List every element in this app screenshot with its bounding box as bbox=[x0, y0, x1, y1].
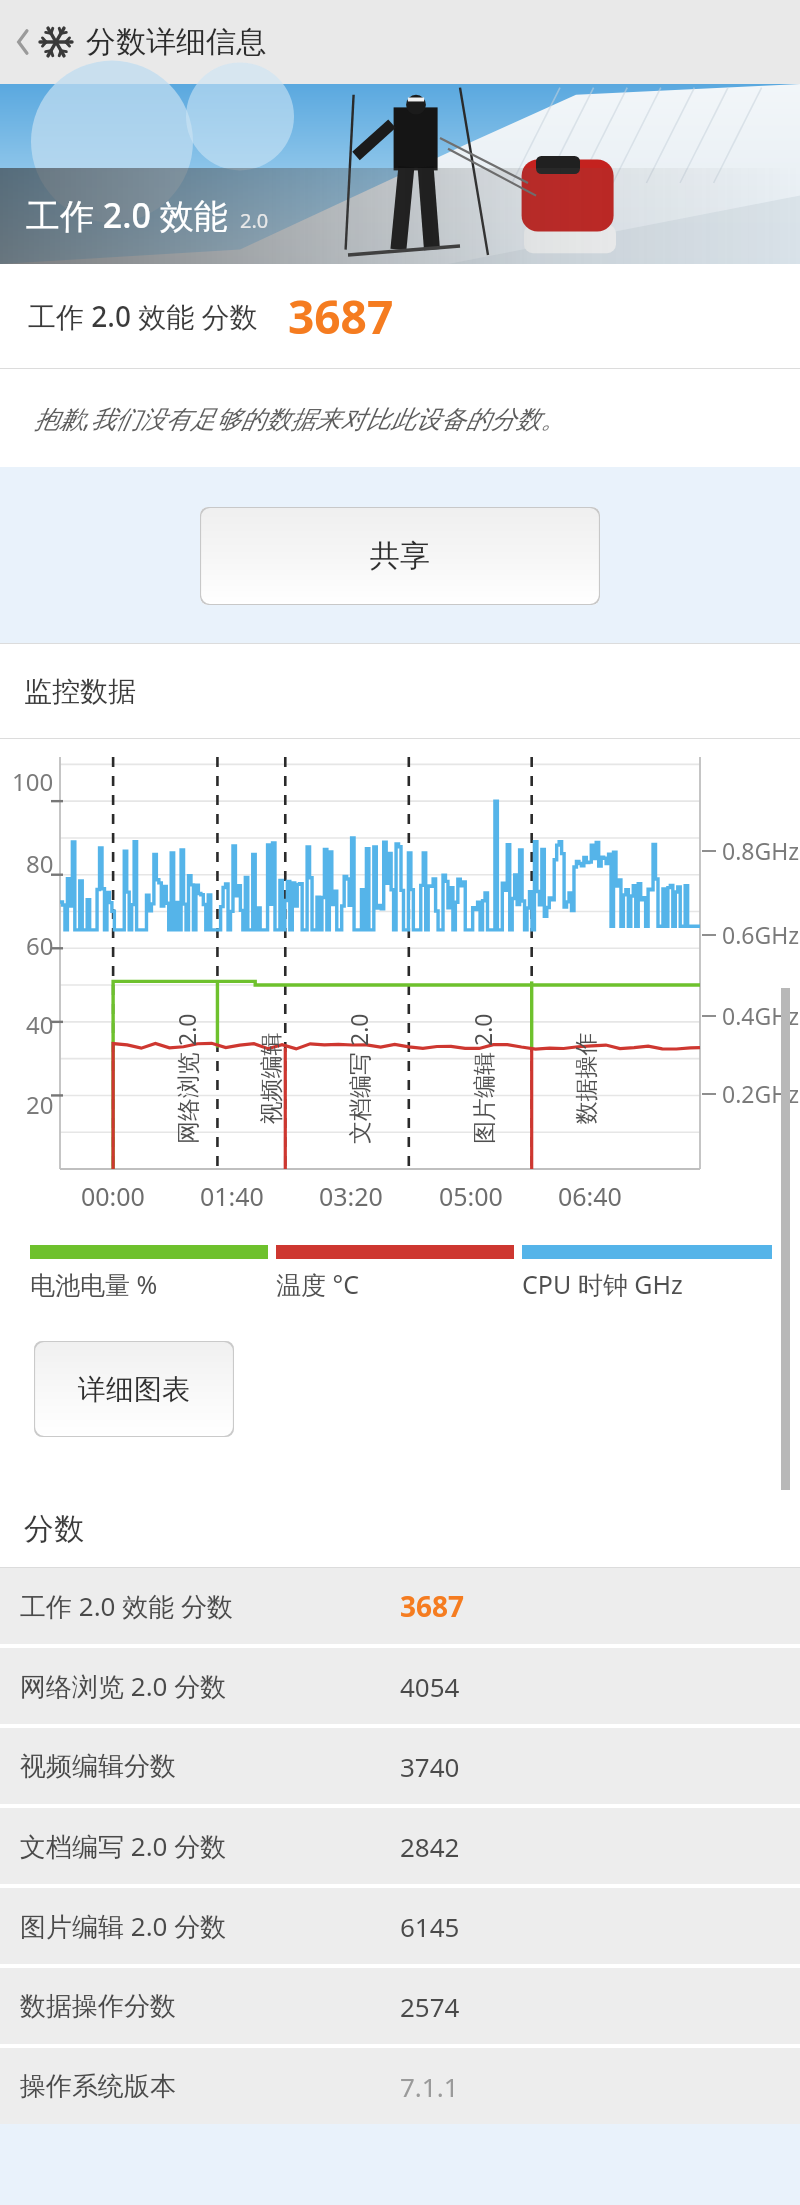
staticText: 2842 bbox=[400, 1829, 460, 1864]
staticText: 文档编写 2.0 bbox=[343, 1013, 374, 1144]
staticText: 工作 2.0 效能 分数 bbox=[20, 1588, 233, 1624]
staticText: 视频编辑 bbox=[256, 1032, 285, 1124]
staticText: 分数详细信息 bbox=[86, 23, 266, 61]
staticText: 工作 2.0 效能 分数 bbox=[28, 297, 258, 335]
staticText: 文档编写 2.0 分数 bbox=[20, 1828, 227, 1864]
staticText: 00:00 bbox=[81, 1179, 145, 1213]
button[interactable]: 共享 bbox=[200, 507, 600, 605]
staticText: 0.4GHz bbox=[722, 1000, 800, 1031]
staticText: 详细图表 bbox=[78, 1372, 190, 1407]
button[interactable]: 工作 2.0 效能 分数 bbox=[0, 1568, 800, 1644]
staticText: 100 bbox=[12, 765, 54, 798]
staticText: 0.2GHz bbox=[722, 1078, 800, 1109]
staticText: 图片编辑 2.0 bbox=[467, 1013, 498, 1144]
staticText: 2574 bbox=[400, 1989, 460, 2024]
button[interactable]: 详细图表 bbox=[34, 1341, 234, 1437]
staticText: 7.1.1 bbox=[400, 2069, 459, 2104]
staticText: 6145 bbox=[400, 1909, 460, 1944]
staticText: 监控数据 bbox=[24, 674, 136, 709]
staticText: 60 bbox=[26, 929, 54, 962]
staticText: 分数 bbox=[24, 1510, 84, 1548]
staticText: 2.0 bbox=[240, 207, 269, 234]
button[interactable]: 数据操作分数 bbox=[0, 1968, 800, 2044]
staticText: CPU 时钟 GHz bbox=[522, 1267, 683, 1301]
button[interactable]: 视频编辑分数 bbox=[0, 1728, 800, 1804]
staticText: 电池电量 % bbox=[30, 1267, 158, 1301]
staticText: 图片编辑 2.0 分数 bbox=[20, 1908, 227, 1944]
staticText: 数据操作 bbox=[571, 1032, 600, 1124]
staticText: 05:00 bbox=[439, 1179, 503, 1213]
staticText: 06:40 bbox=[558, 1179, 622, 1213]
staticText: 操作系统版本 bbox=[20, 2070, 176, 2103]
button[interactable]: 网络浏览 2.0 分数 bbox=[0, 1648, 800, 1724]
staticText: 网络浏览 2.0 分数 bbox=[20, 1668, 227, 1704]
staticText: 工作 2.0 效能 bbox=[26, 192, 228, 238]
staticText: 3687 bbox=[288, 285, 394, 348]
button[interactable]: 文档编写 2.0 分数 bbox=[0, 1808, 800, 1884]
staticText: 0.6GHz bbox=[722, 919, 800, 950]
staticText: 01:40 bbox=[200, 1179, 264, 1213]
staticText: 抱歉,我们没有足够的数据来对比此设备的分数。 bbox=[34, 401, 566, 435]
staticText: 3687 bbox=[400, 1587, 465, 1625]
button[interactable]: 图片编辑 2.0 分数 bbox=[0, 1888, 800, 1964]
staticText: 0.8GHz bbox=[722, 835, 800, 866]
staticText: 数据操作分数 bbox=[20, 1990, 176, 2023]
staticText: 温度 °C bbox=[276, 1267, 360, 1301]
staticText: 40 bbox=[26, 1008, 54, 1041]
staticText: 3740 bbox=[400, 1749, 460, 1784]
staticText: 4054 bbox=[400, 1669, 460, 1704]
button[interactable]: 分数详细信息 bbox=[0, 0, 800, 84]
staticText: 80 bbox=[26, 847, 54, 880]
staticText: 20 bbox=[26, 1088, 54, 1121]
staticText: 03:20 bbox=[319, 1179, 383, 1213]
staticText: 网络浏览 2.0 bbox=[171, 1013, 202, 1144]
button[interactable]: 操作系统版本 bbox=[0, 2048, 800, 2124]
staticText: 共享 bbox=[370, 537, 430, 575]
staticText: 视频编辑分数 bbox=[20, 1750, 176, 1783]
